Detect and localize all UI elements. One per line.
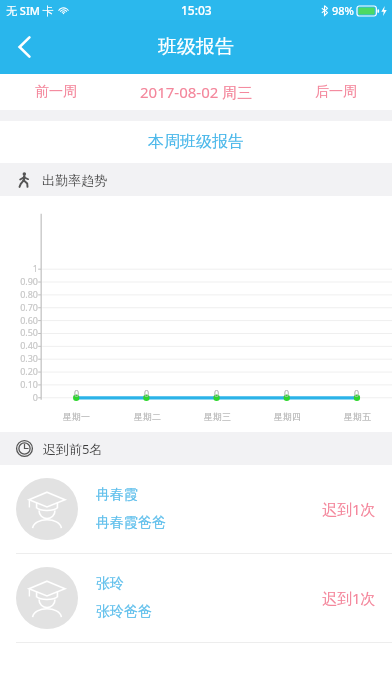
staticText: 0.30 [0, 352, 38, 364]
staticText: 冉春霞爸爸 [96, 514, 166, 532]
button[interactable]: 前一周 [0, 74, 112, 110]
staticText: 0.70 [0, 301, 38, 313]
button[interactable]: Back [0, 23, 48, 71]
staticText: 0.80 [0, 288, 38, 300]
staticText: 星期一 [63, 411, 90, 422]
staticText: 张玲爸爸 [96, 603, 152, 621]
staticText: 0.60 [0, 314, 38, 326]
staticText: 0.20 [0, 365, 38, 377]
staticText: 0 [0, 391, 38, 403]
staticText: 星期四 [274, 411, 301, 422]
button[interactable]: 张玲 [0, 554, 392, 643]
staticText: 0.50 [0, 326, 38, 338]
staticText: 0.40 [0, 339, 38, 351]
staticText: 冉春霞 [96, 486, 138, 504]
button[interactable]: 2017-08-02 周三 [112, 74, 280, 110]
staticText: 0 [354, 387, 360, 399]
staticText: 15:03 [181, 2, 212, 18]
staticText: 出勤率趋势 [42, 172, 107, 188]
button[interactable]: 后一周 [280, 74, 392, 110]
staticText: 1 [0, 262, 38, 274]
staticText: 前一周 [35, 83, 77, 101]
staticText: 张玲 [96, 575, 124, 593]
staticText: 98% [332, 3, 354, 18]
staticText: 后一周 [315, 83, 357, 101]
staticText: 0 [74, 387, 80, 399]
staticText: 迟到1次 [322, 499, 376, 519]
button[interactable]: 冉春霞 [0, 465, 392, 554]
staticText: 0.10 [0, 378, 38, 390]
staticText: 0.90 [0, 275, 38, 287]
staticText: 无 SIM 卡 [6, 3, 54, 18]
staticText: 迟到1次 [322, 588, 376, 608]
staticText: 迟到前5名 [43, 440, 103, 458]
staticText: 班级报告 [158, 35, 234, 59]
staticText: 0 [284, 387, 290, 399]
staticText: 星期二 [134, 411, 161, 422]
staticText: 本周班级报告 [148, 132, 244, 152]
staticText: 星期五 [344, 411, 371, 422]
button[interactable]: 本周班级报告 [0, 121, 392, 163]
staticText: 0 [144, 387, 150, 399]
staticText: 0 [214, 387, 220, 399]
staticText: 2017-08-02 周三 [140, 82, 253, 102]
staticText: 星期三 [204, 411, 231, 422]
